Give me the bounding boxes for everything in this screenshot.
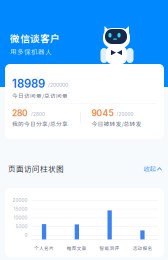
staticText: 推荐文章 xyxy=(67,245,87,252)
button[interactable]: 收起 xyxy=(141,161,164,176)
staticText: 9045 xyxy=(92,108,114,118)
staticText: 页面访问柱状图 xyxy=(8,163,64,174)
staticText: /200000 xyxy=(48,82,68,88)
staticText: 5000 xyxy=(15,224,27,229)
staticText: 我的今日分享/总分享 xyxy=(12,120,68,128)
staticText: 15000 xyxy=(13,206,27,212)
staticText: 智能测评 xyxy=(100,245,120,252)
staticText: 20000 xyxy=(12,197,27,203)
staticText: /20000 xyxy=(117,111,134,117)
staticText: 用多保机器人 xyxy=(10,47,52,56)
staticText: 活动报名 xyxy=(132,245,152,252)
staticText: 10000 xyxy=(13,215,27,221)
staticText: 收起 xyxy=(143,164,155,173)
staticText: 18989 xyxy=(12,77,45,90)
staticText: 今日被转发/总转发 xyxy=(92,120,142,128)
staticText: 280 xyxy=(12,108,28,118)
staticText: 微信谈客户 xyxy=(10,31,60,45)
staticText: 今日访问量/总访问量 xyxy=(12,91,68,99)
staticText: 0 xyxy=(24,232,27,238)
staticText: /2800 xyxy=(31,111,45,117)
staticText: 个人名片 xyxy=(34,245,54,252)
